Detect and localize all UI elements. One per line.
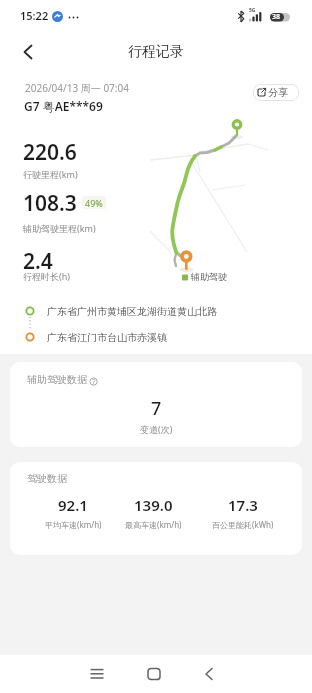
staticText: 行驶里程(km)	[23, 168, 78, 180]
staticText: 辅助驾驶里程(km)	[23, 222, 96, 234]
staticText: 92.1	[58, 495, 88, 515]
button[interactable]	[137, 655, 171, 693]
staticText: 220.6	[23, 138, 77, 167]
staticText: 变道(次)	[140, 423, 173, 435]
staticText: 108.3	[23, 189, 77, 218]
staticText: 2.4	[23, 247, 53, 276]
staticText: 行程记录	[128, 43, 184, 61]
button[interactable]	[8, 32, 48, 72]
staticText: 平均车速(km/h)	[45, 519, 102, 530]
button[interactable]: 辅助驾驶数据	[10, 362, 302, 447]
staticText: 最高车速(km/h)	[125, 519, 182, 530]
staticText: 38	[272, 12, 281, 22]
button[interactable]: 分享	[253, 84, 299, 101]
staticText: 5G	[249, 7, 256, 14]
staticText: 广东省江门市台山市赤溪镇	[47, 331, 167, 344]
staticText: 17.3	[228, 495, 258, 515]
staticText: 辅助驾驶数据	[27, 373, 87, 386]
button[interactable]	[192, 655, 226, 693]
staticText: 2026/04/13 周一 07:04	[25, 81, 129, 95]
staticText: 139.0	[134, 495, 173, 515]
staticText: 行程时长(h)	[23, 270, 70, 282]
staticText: 驾驶数据	[27, 472, 67, 485]
staticText: 15:22	[20, 8, 49, 23]
staticText: 辅助驾驶	[191, 271, 227, 282]
staticText: 百公里能耗(kWh)	[212, 519, 274, 530]
staticText: 7	[151, 396, 162, 421]
staticText: 49%	[85, 197, 103, 209]
staticText: 分享	[268, 86, 288, 99]
staticText: 广东省广州市黄埔区龙湖街道黄山北路	[47, 305, 217, 318]
button[interactable]: 驾驶数据	[10, 462, 302, 555]
button[interactable]	[80, 655, 114, 693]
staticText: G7 粤AE***69	[24, 98, 103, 114]
